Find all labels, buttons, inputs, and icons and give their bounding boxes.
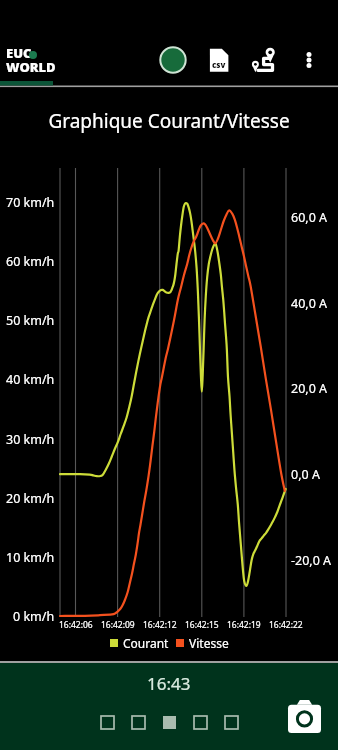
staticText: Vitesse — [189, 635, 229, 651]
staticText: 16:42:12 — [143, 619, 177, 631]
staticText: 20,0 A — [291, 380, 328, 397]
button[interactable]: Record — [154, 41, 191, 78]
button[interactable]: Camera — [286, 698, 323, 735]
staticText: 16:42:15 — [185, 619, 219, 631]
staticText: 60 km/h — [6, 253, 55, 270]
button[interactable]: Route — [248, 41, 286, 79]
staticText: 30 km/h — [6, 431, 55, 448]
staticText: 0 km/h — [13, 608, 55, 625]
staticText: 16:42:19 — [227, 619, 261, 631]
button[interactable]: Page 4 — [194, 716, 207, 729]
staticText: 10 km/h — [6, 549, 55, 566]
staticText: Graphique Courant/Vitesse — [0, 108, 338, 134]
staticText: 60,0 A — [291, 209, 328, 226]
staticText: csv — [212, 59, 226, 70]
staticText: 50 km/h — [6, 312, 55, 329]
staticText: 16:43 — [147, 672, 191, 695]
staticText: EUC — [6, 44, 32, 62]
staticText: 16:42:22 — [269, 619, 303, 631]
staticText: 40,0 A — [291, 295, 328, 312]
button[interactable]: More options — [290, 41, 327, 78]
button[interactable]: Page 1 — [101, 716, 114, 729]
staticText: 16:42:06 — [59, 619, 93, 631]
staticText: 0,0 A — [291, 466, 320, 483]
staticText: -20,0 A — [291, 552, 332, 569]
button[interactable]: Export CSV — [200, 41, 237, 78]
staticText: 20 km/h — [6, 490, 55, 507]
staticText: 70 km/h — [6, 194, 55, 211]
staticText: 40 km/h — [6, 371, 55, 388]
button[interactable]: Page 5 — [225, 716, 238, 729]
staticText: WORLD — [6, 58, 56, 76]
staticText: 16:42:09 — [101, 619, 135, 631]
staticText: Courant — [123, 635, 169, 651]
button[interactable]: Page 2 — [132, 716, 145, 729]
